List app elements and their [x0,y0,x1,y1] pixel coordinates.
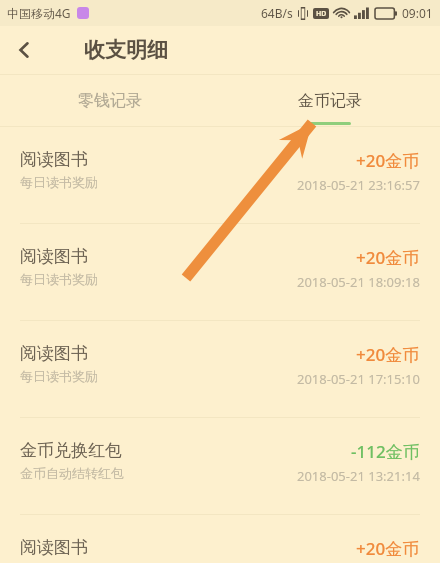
button[interactable]: Back [0,26,48,74]
staticText: 09:01 [402,5,433,21]
staticText: +20金币 [356,343,420,366]
staticText: 金币自动结转红包 [20,465,124,481]
staticText: 2018-05-21 13:21:14 [297,467,420,485]
button[interactable]: 阅读图书 [0,127,440,223]
button[interactable]: 阅读图书 [0,321,440,417]
button[interactable]: 阅读图书 [0,515,440,563]
staticText: 每日读书奖励 [20,174,98,190]
button[interactable]: 阅读图书 [0,224,440,320]
button[interactable]: 金币记录 [220,75,440,126]
staticText: +20金币 [356,537,420,560]
staticText: 阅读图书 [20,343,88,364]
staticText: 每日读书奖励 [20,368,98,384]
staticText: +20金币 [356,149,420,172]
staticText: 2018-05-21 18:09:18 [297,273,420,291]
staticText: 阅读图书 [20,246,88,267]
staticText: 2018-05-21 17:15:10 [297,370,420,388]
staticText: 金币兑换红包 [20,440,122,461]
button[interactable]: 零钱记录 [0,75,220,126]
staticText: 每日读书奖励 [20,271,98,287]
staticText: 金币记录 [298,91,362,111]
staticText: 阅读图书 [20,537,88,558]
staticText: 阅读图书 [20,149,88,170]
staticText: 中国移动4G [7,5,71,21]
staticText: 收支明细 [84,37,168,63]
staticText: 零钱记录 [78,91,142,111]
staticText: +20金币 [356,246,420,269]
staticText: 64B/s [261,5,293,21]
staticText: HD [316,9,327,19]
staticText: -112金币 [351,440,420,463]
button[interactable]: 金币兑换红包 [0,418,440,514]
staticText: 2018-05-21 23:16:57 [297,176,420,194]
